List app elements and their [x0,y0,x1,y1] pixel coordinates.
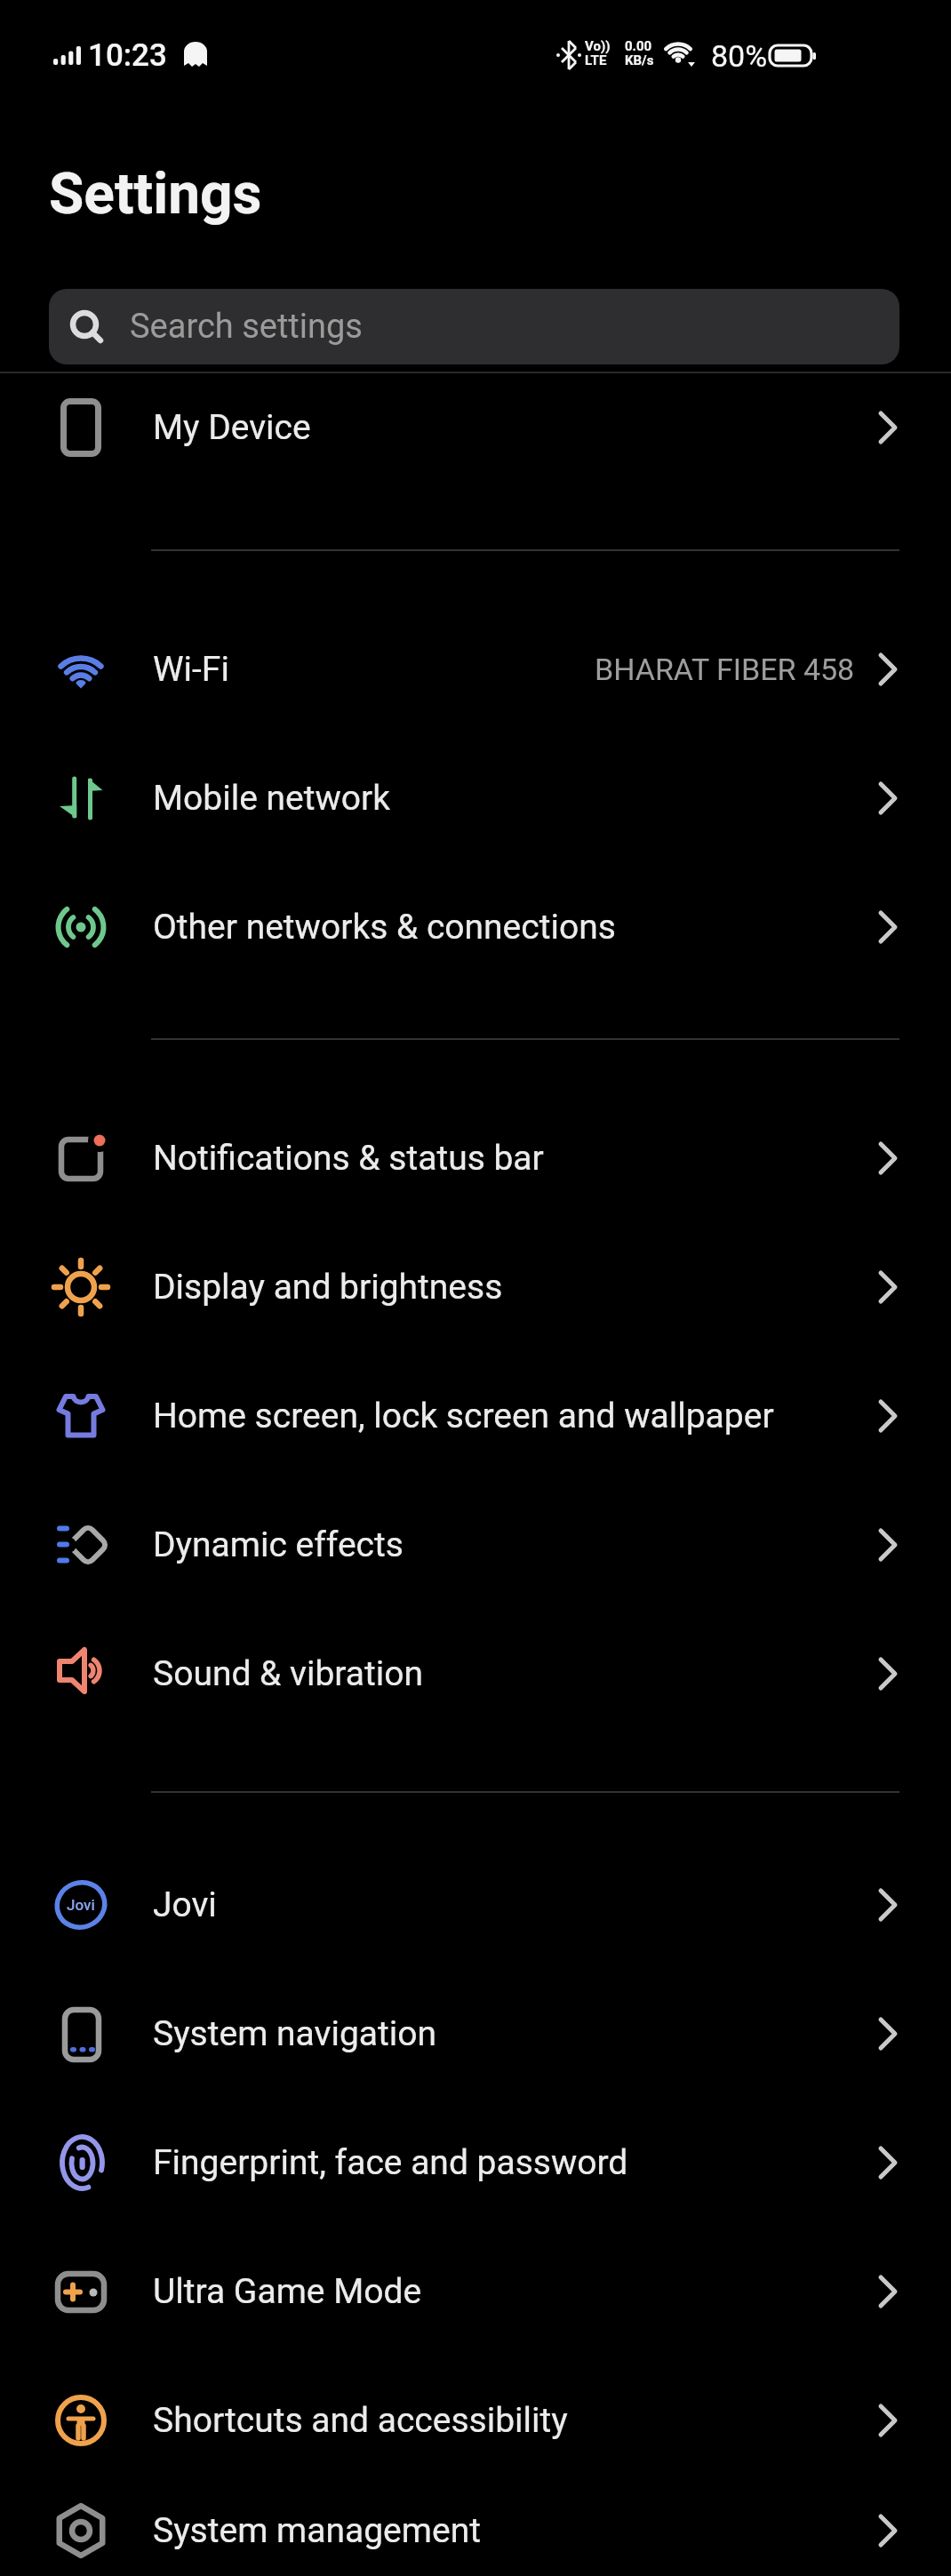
button[interactable]: Ultra Game Mode [0,2227,951,2356]
button[interactable]: Shortcuts and accessibility [0,2356,951,2484]
staticText: Settings [49,161,262,228]
staticText: Dynamic effects [153,1524,404,1565]
button[interactable]: My Device [0,373,951,482]
staticText: Vo)) [585,38,611,54]
staticText: Mobile network [153,778,391,819]
staticText: BHARAT FIBER 458 [595,652,855,687]
button[interactable]: Wi-Fi [0,604,951,733]
staticText: Shortcuts and accessibility [153,2400,568,2441]
staticText: Display and brightness [153,1267,503,1308]
button[interactable]: Notifications & status bar [0,1093,951,1222]
staticText: Notifications & status bar [153,1138,544,1179]
button[interactable]: System navigation [0,1969,951,2098]
staticText: Ultra Game Mode [153,2271,422,2312]
button[interactable]: Jovi [0,1840,951,1969]
button[interactable]: Fingerprint, face and password [0,2098,951,2227]
staticText: Wi-Fi [153,649,229,690]
staticText: Jovi [67,1896,95,1914]
staticText: Other networks & connections [153,907,616,948]
staticText: Home screen, lock screen and wallpaper [153,1396,774,1436]
button[interactable]: Other networks & connections [0,862,951,991]
button[interactable]: Home screen, lock screen and wallpaper [0,1351,951,1480]
button[interactable]: Dynamic effects [0,1480,951,1609]
staticText: Sound & vibration [153,1653,424,1694]
button[interactable]: Search settings [49,289,899,364]
staticText: Jovi [153,1884,217,1925]
staticText: Fingerprint, face and password [153,2142,628,2183]
staticText: LTE [585,52,607,68]
staticText: System management [153,2510,481,2551]
staticText: 80% [711,38,768,74]
staticText: 10:23 [88,37,167,74]
button[interactable]: Sound & vibration [0,1609,951,1738]
staticText: 0.00 [625,38,652,54]
staticText: My Device [153,407,311,448]
staticText: KB/s [625,52,654,68]
button[interactable]: Display and brightness [0,1222,951,1351]
button[interactable]: System management [0,2484,951,2576]
button[interactable]: Mobile network [0,733,951,862]
staticText: Search settings [130,307,363,347]
staticText: System navigation [153,2013,437,2054]
